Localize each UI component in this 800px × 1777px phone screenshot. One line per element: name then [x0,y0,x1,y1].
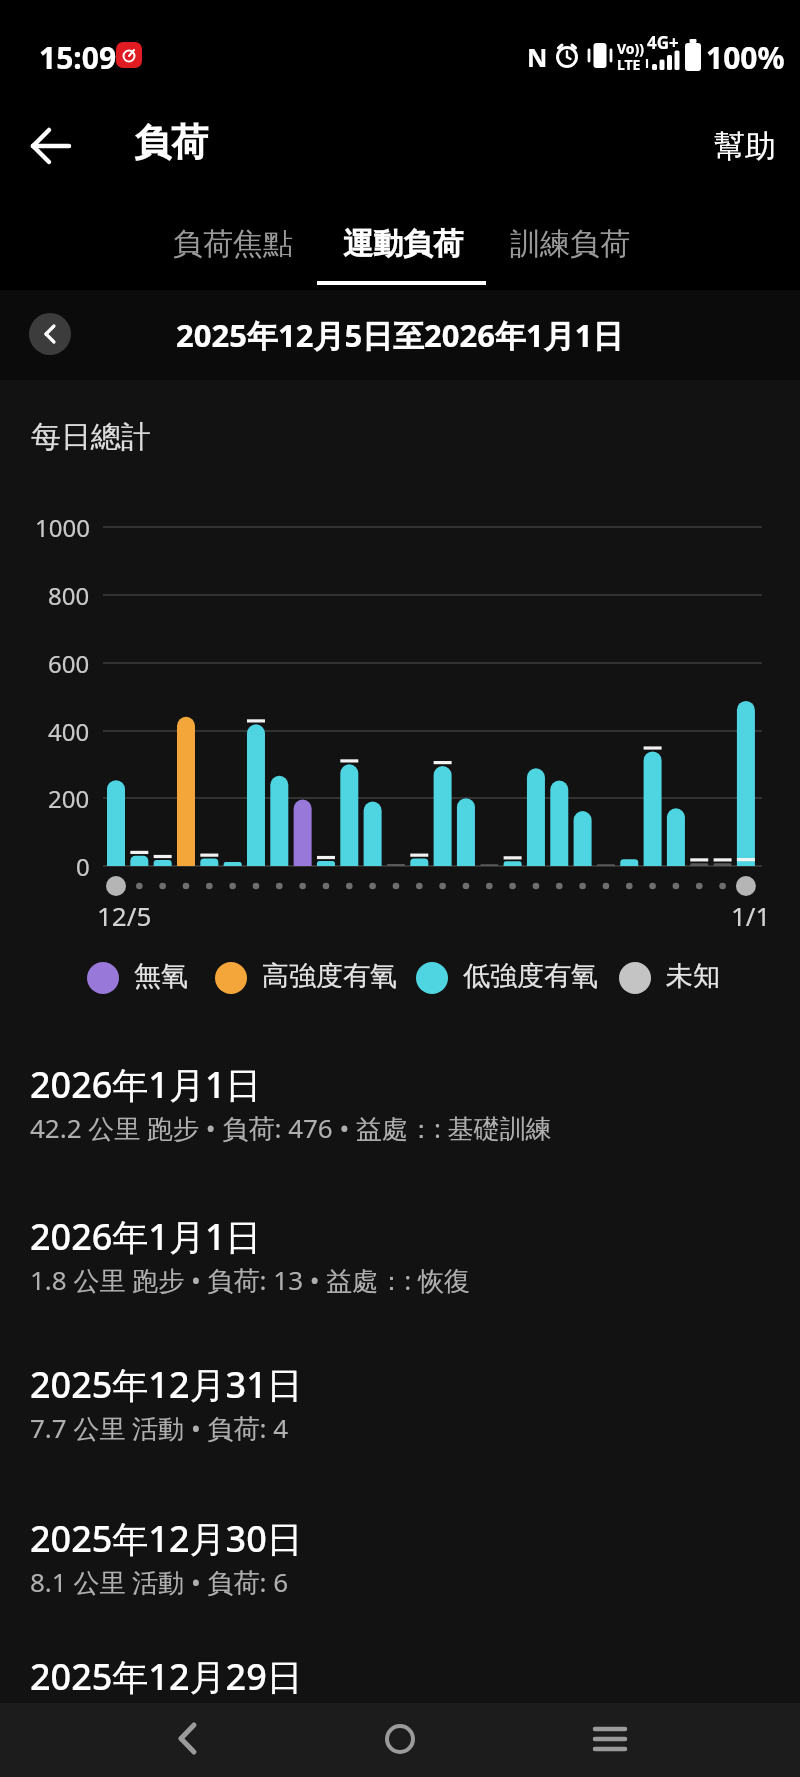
staticText: 1000 [35,511,90,544]
staticText: 每日總計 [31,418,151,456]
staticText: 15:09 [39,37,117,78]
button[interactable] [152,1703,224,1775]
staticText: 12/5 [97,898,152,933]
staticText: 負荷 [134,119,208,166]
staticText: 42.2 公里 跑步 • 負荷: 476 • 益處：: 基礎訓練 [30,1110,552,1146]
staticText: 0 [76,850,90,883]
button[interactable]: 幫助 [700,118,790,174]
button[interactable]: 2025年12月31日 [0,1344,800,1490]
staticText: 2025年12月29日 [30,1652,303,1701]
staticText: 未知 [666,959,720,993]
staticText: 訓練負荷 [510,225,630,263]
staticText: 800 [48,579,90,612]
staticText: 無氧 [134,959,188,993]
button[interactable] [29,313,71,355]
staticText: 400 [48,715,90,748]
button[interactable]: 運動負荷 [330,200,476,288]
button[interactable] [574,1703,646,1775]
staticText: 600 [48,647,90,680]
staticText: 負荷焦點 [173,225,293,263]
staticText: 2026年1月1日 [30,1060,262,1109]
staticText: 高強度有氧 [262,959,397,993]
staticText: 100% [706,37,785,78]
staticText: Vo)) [617,39,645,58]
button[interactable] [364,1703,436,1775]
staticText: 幫助 [714,127,776,166]
staticText: 2026年1月1日 [30,1212,262,1261]
staticText: 低強度有氧 [463,959,598,993]
button[interactable]: 訓練負荷 [497,200,643,288]
button[interactable]: 2026年1月1日 [0,1044,800,1190]
staticText: 2025年12月30日 [30,1514,303,1563]
staticText: 運動負荷 [343,225,463,263]
staticText: 2025年12月5日至2026年1月1日 [176,314,624,356]
button[interactable]: 負荷焦點 [160,200,306,288]
button[interactable] [18,113,84,179]
staticText: 4G+ [647,31,679,54]
staticText: 8.1 公里 活動 • 負荷: 6 [30,1564,289,1600]
staticText: 200 [48,782,90,815]
staticText: LTE [617,55,641,74]
staticText: 7.7 公里 活動 • 負荷: 4 [30,1410,289,1446]
button[interactable]: 2026年1月1日 [0,1196,800,1342]
button[interactable]: 2025年12月30日 [0,1498,800,1644]
staticText: N [527,40,548,74]
staticText: 2025年12月31日 [30,1360,303,1409]
button[interactable]: 2025年12月29日 [0,1636,800,1777]
staticText: 1/1 [731,898,771,933]
staticText: 1.8 公里 跑步 • 負荷: 13 • 益處：: 恢復 [30,1262,471,1298]
